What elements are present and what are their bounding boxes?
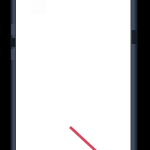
button[interactable]: Phone screen preview <box>0 0 150 150</box>
